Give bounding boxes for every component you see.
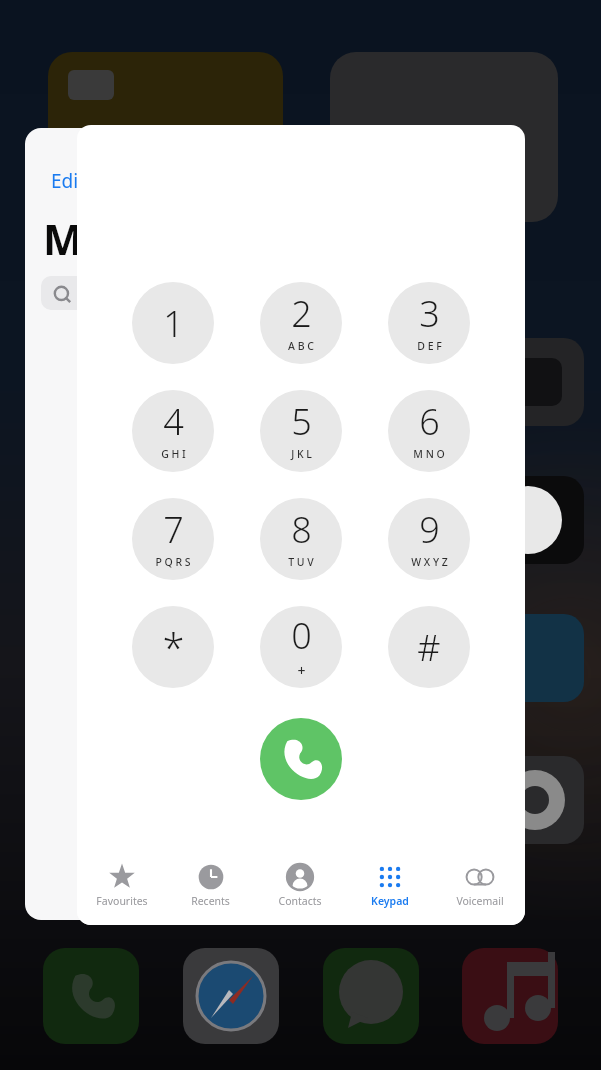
button[interactable]: Favourites xyxy=(77,857,166,908)
staticText: 5 xyxy=(291,397,312,446)
staticText: Voicemail xyxy=(456,894,504,908)
staticText: 2 xyxy=(291,289,312,338)
button[interactable]: Call xyxy=(260,718,342,800)
staticText: Edit xyxy=(51,168,86,194)
staticText: M N O xyxy=(413,447,445,461)
staticText: 3 xyxy=(419,289,440,338)
staticText: G H I xyxy=(161,447,186,461)
staticText: * xyxy=(162,620,185,674)
staticText: 8 xyxy=(291,505,312,554)
button[interactable]: 4 xyxy=(132,390,214,472)
button[interactable]: hash xyxy=(388,606,470,688)
staticText: 6 xyxy=(419,397,440,446)
staticText: 1 xyxy=(163,299,184,348)
staticText: + xyxy=(297,661,306,680)
staticText: 4 xyxy=(163,397,184,446)
staticText: 9 xyxy=(419,505,440,554)
staticText: P Q R S xyxy=(155,555,191,569)
button[interactable]: Voicemail xyxy=(435,857,525,908)
button[interactable]: 5 xyxy=(260,390,342,472)
staticText: Contacts xyxy=(278,894,322,908)
button[interactable]: 1 xyxy=(132,282,214,364)
button[interactable]: 6 xyxy=(388,390,470,472)
staticText: J K L xyxy=(291,447,312,461)
staticText: A B C xyxy=(288,339,314,353)
button[interactable]: 2 xyxy=(260,282,342,364)
button[interactable]: 8 xyxy=(260,498,342,580)
button[interactable]: 7 xyxy=(132,498,214,580)
staticText: 7 xyxy=(163,505,184,554)
staticText: Recents xyxy=(191,894,230,908)
button[interactable]: 0 xyxy=(260,606,342,688)
button[interactable]: 9 xyxy=(388,498,470,580)
staticText: M xyxy=(43,210,83,267)
staticText: # xyxy=(417,623,441,672)
staticText: Keypad xyxy=(371,894,409,908)
staticText: D E F xyxy=(417,339,442,353)
button[interactable]: Keypad xyxy=(345,857,435,908)
button[interactable]: 3 xyxy=(388,282,470,364)
staticText: T U V xyxy=(288,555,314,569)
button[interactable]: Contacts xyxy=(255,857,345,908)
button[interactable]: star xyxy=(132,606,214,688)
button[interactable]: Recents xyxy=(166,857,255,908)
staticText: Favourites xyxy=(96,894,148,908)
staticText: 0 xyxy=(291,611,312,660)
staticText: W X Y Z xyxy=(411,555,448,569)
